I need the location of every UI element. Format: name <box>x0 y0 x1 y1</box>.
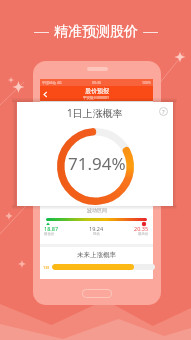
staticText: 最高价 <box>138 232 149 236</box>
button[interactable]: 波动区间 <box>40 206 153 244</box>
staticText: 71.94% <box>68 152 126 175</box>
button[interactable]: Back <box>40 87 50 101</box>
staticText: 1日 <box>43 265 50 270</box>
staticText: 20.35 <box>134 225 149 232</box>
staticText: 波动区间 <box>87 207 107 213</box>
staticText: 最低价 <box>44 232 55 236</box>
staticText: 19.24 <box>89 225 104 232</box>
staticText: 精准预测股价 <box>54 23 138 41</box>
staticText: 股价预报 <box>85 87 109 95</box>
staticText: 平安银行000001 <box>83 95 110 100</box>
button[interactable]: Help <box>159 107 168 116</box>
staticText: 1日上涨概率 <box>67 106 123 120</box>
staticText: 现价 <box>93 232 100 236</box>
staticText: ? <box>162 108 165 116</box>
staticText: 未来上涨概率 <box>77 251 116 259</box>
staticText: 18.87 <box>44 225 59 232</box>
staticText: 中国移动 4G <box>42 80 62 85</box>
staticText: 100% <box>142 80 151 85</box>
staticText: 09:36 <box>92 80 101 85</box>
button[interactable]: 未来上涨概率 <box>40 247 153 279</box>
